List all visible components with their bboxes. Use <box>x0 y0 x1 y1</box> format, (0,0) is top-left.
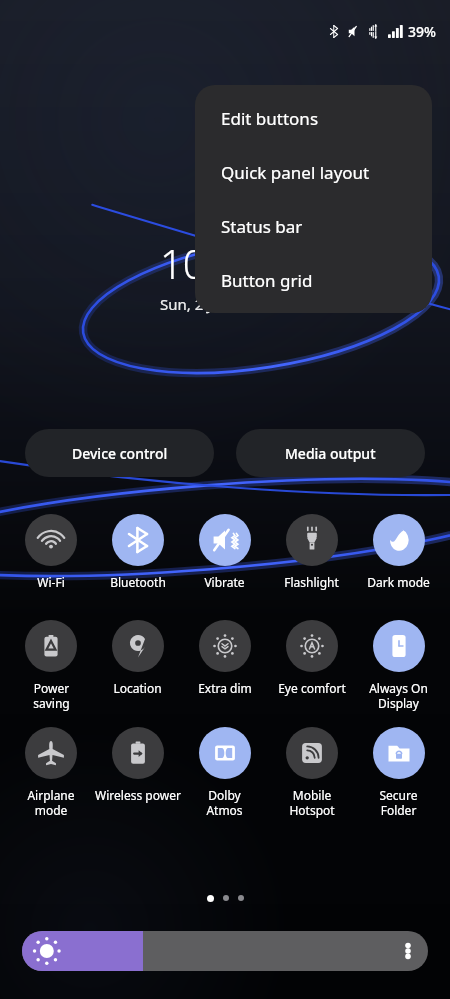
other: Extra dim <box>199 620 251 672</box>
other: Eye comfort <box>286 620 338 672</box>
staticText: Flashlight <box>284 574 339 590</box>
staticText: Bluetooth <box>110 574 166 590</box>
button[interactable]: Media output <box>236 429 425 477</box>
staticText: Secure Folder <box>379 787 418 818</box>
staticText: Sun, 2 June <box>160 294 239 314</box>
other: Power saving <box>25 620 77 672</box>
other: Wireless power <box>112 727 164 779</box>
staticText: Dolby Atmos <box>206 787 243 818</box>
other: Vibrate <box>199 514 251 566</box>
staticText: Wireless power <box>95 787 181 803</box>
button[interactable]: Wi-Fi <box>8 513 94 591</box>
staticText: Quick panel layout <box>221 161 370 184</box>
button[interactable]: Extra dim <box>181 619 268 697</box>
button[interactable]: Location <box>94 619 181 697</box>
button[interactable]: Flashlight <box>268 513 355 591</box>
other: Location <box>112 620 164 672</box>
button[interactable]: Dolby Atmos <box>181 726 268 819</box>
other: Dark mode <box>373 514 425 566</box>
staticText: Status bar <box>221 215 303 238</box>
button[interactable]: Status bar <box>195 199 432 253</box>
button[interactable]: Mobile Hotspot <box>268 726 355 819</box>
staticText: Power saving <box>33 680 70 711</box>
other: Dolby Atmos <box>199 727 251 779</box>
button[interactable]: Brightness options <box>22 931 428 971</box>
button[interactable]: Wireless power <box>94 726 181 804</box>
other: Flashlight <box>286 514 338 566</box>
other: Always On Display <box>373 620 425 672</box>
other: Wi-Fi <box>25 514 77 566</box>
staticText: Device control <box>72 444 168 463</box>
button[interactable]: Quick panel layout <box>195 145 432 199</box>
other: Mobile Hotspot <box>286 727 338 779</box>
other: Airplane mode <box>25 727 77 779</box>
staticText: Airplane mode <box>27 787 75 818</box>
staticText: Location <box>113 680 162 696</box>
button[interactable]: Vibrate <box>181 513 268 591</box>
button[interactable]: Bluetooth <box>94 513 181 591</box>
button[interactable]: Power saving <box>8 619 94 712</box>
staticText: Edit buttons <box>221 107 319 130</box>
staticText: Dark mode <box>367 574 430 590</box>
button[interactable]: Always On Display <box>355 619 442 712</box>
staticText: Extra dim <box>198 680 252 696</box>
button[interactable]: Airplane mode <box>8 726 94 819</box>
other: Bluetooth <box>112 514 164 566</box>
staticText: Vibrate <box>204 574 245 590</box>
staticText: 10:28 <box>160 236 262 290</box>
button[interactable]: Dark mode <box>355 513 442 591</box>
staticText: Eye comfort <box>278 680 346 696</box>
other: Secure Folder <box>373 727 425 779</box>
button[interactable]: Secure Folder <box>355 726 442 819</box>
button[interactable]: Button grid <box>195 253 432 307</box>
staticText: Media output <box>285 444 376 463</box>
staticText: Wi-Fi <box>37 574 65 590</box>
staticText: 39% <box>408 22 436 41</box>
staticText: Always On Display <box>369 680 428 711</box>
button[interactable]: Edit buttons <box>195 91 432 145</box>
button[interactable]: Brightness options <box>388 931 428 971</box>
staticText: Button grid <box>221 269 313 292</box>
button[interactable]: Device control <box>25 429 214 477</box>
staticText: Mobile Hotspot <box>289 787 335 818</box>
button[interactable]: Eye comfort <box>268 619 355 697</box>
